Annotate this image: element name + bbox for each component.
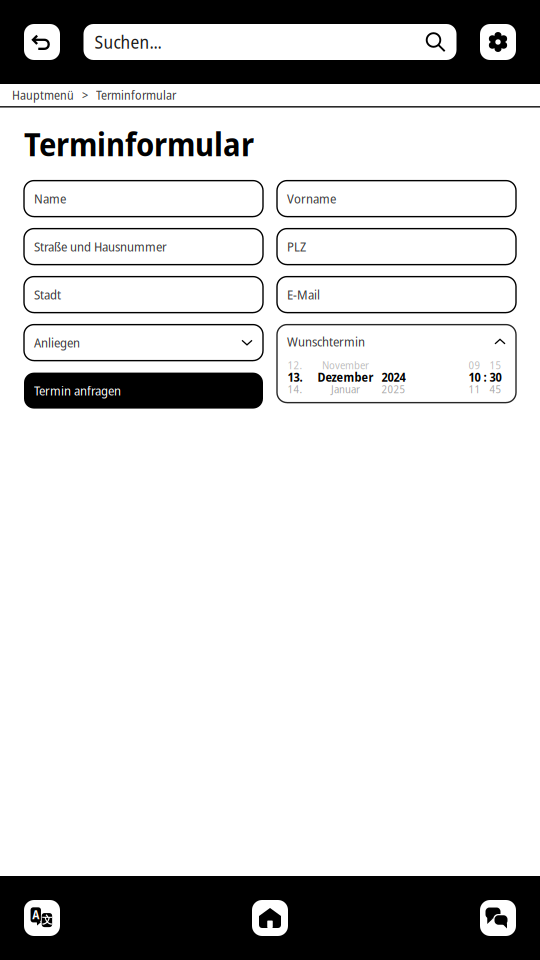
button[interactable]: Einstellungen: [480, 24, 516, 60]
staticText: 15: [489, 358, 501, 372]
staticText: Terminformular: [24, 122, 254, 166]
staticText: Termin anfragen: [34, 382, 121, 399]
staticText: 09: [468, 358, 480, 372]
button[interactable]: Chat: [480, 900, 516, 936]
staticText: 14.: [287, 382, 302, 396]
staticText: 11: [468, 382, 480, 396]
staticText: 45: [489, 382, 501, 396]
staticText: 30: [489, 369, 501, 385]
button[interactable]: Anliegen: [24, 325, 263, 361]
staticText: Anliegen: [34, 334, 80, 351]
button[interactable]: Name: [24, 181, 263, 217]
button[interactable]: Termin anfragen: [24, 373, 263, 409]
staticText: Suchen...: [94, 30, 161, 54]
staticText: Stadt: [34, 286, 61, 303]
staticText: Terminformular: [96, 87, 176, 103]
staticText: November: [322, 358, 369, 372]
button[interactable]: PLZ: [277, 229, 516, 265]
button[interactable]: Vorname: [277, 181, 516, 217]
staticText: PLZ: [287, 238, 306, 255]
button[interactable]: Sprache: [24, 900, 60, 936]
button[interactable]: E-Mail: [277, 277, 516, 313]
button[interactable]: Zurück: [24, 24, 60, 60]
button[interactable]: Startseite: [252, 900, 288, 936]
staticText: Name: [34, 190, 66, 207]
staticText: 文: [42, 913, 52, 927]
staticText: 10: [468, 369, 480, 385]
button[interactable]: Straße und Hausnummer: [24, 229, 263, 265]
staticText: Vorname: [287, 190, 336, 207]
button[interactable]: Stadt: [24, 277, 263, 313]
staticText: 12.: [287, 358, 302, 372]
staticText: :: [483, 369, 486, 385]
staticText: E-Mail: [287, 286, 320, 303]
staticText: 2025: [381, 382, 405, 396]
staticText: 2024: [381, 369, 405, 385]
staticText: Januar: [331, 382, 360, 396]
staticText: Wunschtermin: [287, 333, 365, 350]
staticText: Straße und Hausnummer: [34, 238, 167, 255]
staticText: 13.: [287, 369, 302, 385]
staticText: Hauptmenü: [12, 87, 74, 103]
button[interactable]: Wunschtermin: [277, 325, 516, 403]
button[interactable]: Suchen...: [83, 24, 456, 60]
button[interactable]: Hauptmenü: [12, 87, 74, 103]
staticText: Dezember: [317, 369, 373, 385]
staticText: A: [32, 907, 39, 923]
staticText: >: [82, 87, 88, 103]
